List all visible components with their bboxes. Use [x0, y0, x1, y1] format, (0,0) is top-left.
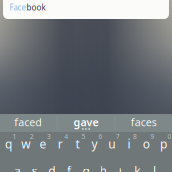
button[interactable]: r: [52, 132, 69, 159]
staticText: t: [75, 136, 79, 152]
staticText: 0: [167, 132, 171, 141]
staticText: u: [108, 136, 115, 152]
button[interactable]: faces: [115, 114, 172, 132]
staticText: 5: [81, 132, 85, 141]
staticText: gave: [73, 115, 98, 129]
staticText: 1: [13, 132, 17, 141]
button[interactable]: f: [60, 159, 77, 172]
staticText: h: [100, 163, 107, 172]
staticText: q: [5, 136, 12, 152]
button[interactable]: u: [103, 132, 120, 159]
staticText: i: [127, 136, 130, 152]
button[interactable]: s: [26, 159, 43, 172]
staticText: 6: [99, 132, 103, 141]
staticText: 9: [150, 132, 154, 141]
staticText: o: [143, 136, 150, 152]
staticText: d: [48, 163, 55, 172]
staticText: a: [14, 163, 21, 172]
staticText: 8: [133, 132, 137, 141]
staticText: g: [82, 163, 89, 172]
button[interactable]: j: [112, 159, 129, 172]
staticText: k: [134, 163, 140, 172]
staticText: 4: [64, 132, 68, 141]
staticText: 7: [116, 132, 120, 141]
button[interactable]: e: [34, 132, 52, 159]
staticText: l: [153, 163, 156, 172]
staticText: s: [32, 163, 38, 172]
staticText: 3: [47, 132, 51, 141]
button[interactable]: y: [86, 132, 103, 159]
button[interactable]: i: [120, 132, 138, 159]
staticText: faced: [14, 115, 42, 129]
staticText: 2: [30, 132, 34, 141]
button[interactable]: g: [77, 159, 94, 172]
staticText: book: [26, 2, 45, 13]
button[interactable]: q: [0, 132, 17, 159]
button[interactable]: gave: [58, 114, 114, 132]
button[interactable]: a: [9, 159, 26, 172]
button[interactable]: p: [155, 132, 172, 159]
staticText: f: [67, 163, 71, 172]
button[interactable]: l: [146, 159, 163, 172]
button[interactable]: Face: [3, 0, 169, 19]
button[interactable]: k: [129, 159, 146, 172]
staticText: p: [160, 136, 167, 152]
button[interactable]: w: [17, 132, 34, 159]
staticText: e: [39, 136, 46, 152]
staticText: y: [92, 136, 98, 152]
staticText: faces: [131, 115, 157, 129]
button[interactable]: h: [95, 159, 112, 172]
button[interactable]: o: [138, 132, 155, 159]
staticText: Face: [9, 2, 26, 13]
staticText: r: [58, 136, 63, 152]
staticText: w: [21, 136, 30, 152]
button[interactable]: d: [43, 159, 60, 172]
button[interactable]: t: [69, 132, 86, 159]
staticText: j: [119, 163, 122, 172]
button[interactable]: faced: [0, 114, 57, 132]
